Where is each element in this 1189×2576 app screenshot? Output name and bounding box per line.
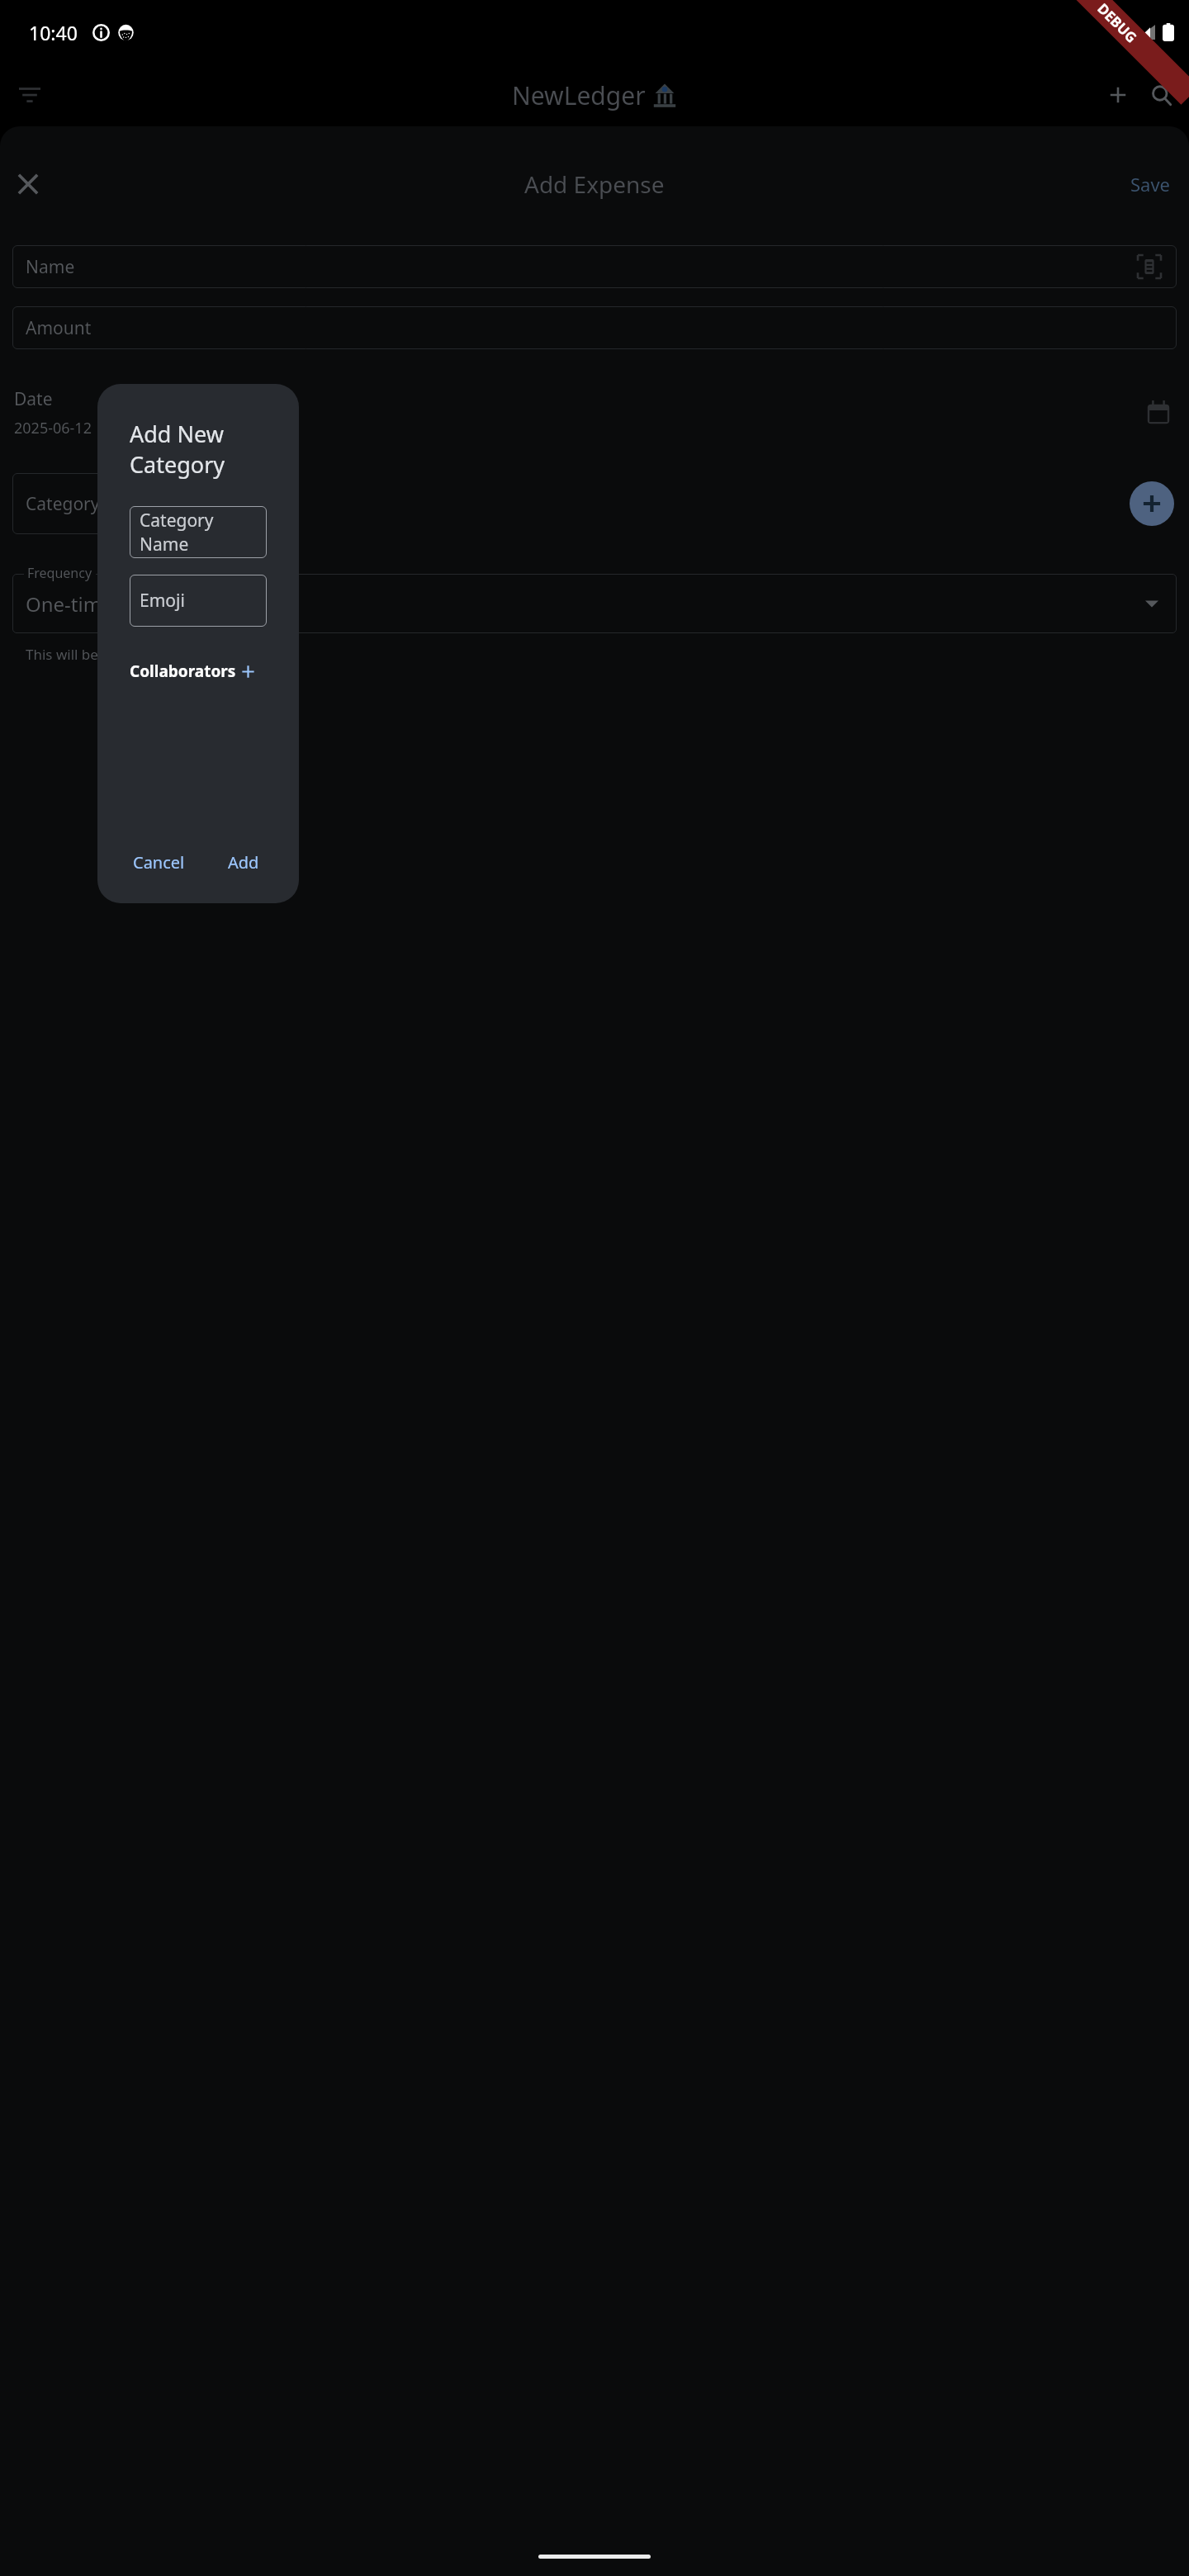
button[interactable]: Add: [216, 843, 271, 882]
other: Pick date: [1140, 395, 1177, 431]
staticText: NewLedger: [512, 78, 646, 112]
button[interactable]: Category Name: [130, 506, 267, 558]
staticText: Amount: [26, 316, 92, 340]
staticText: Add Expense: [524, 168, 665, 200]
staticText: Frequency: [27, 564, 92, 582]
button[interactable]: Save: [1130, 172, 1171, 197]
staticText: Collaborators: [130, 661, 236, 682]
button[interactable]: Emoji: [130, 575, 267, 627]
button[interactable]: Add: [1097, 73, 1139, 116]
staticText: Save: [1130, 172, 1171, 197]
staticText: 2025-06-12: [14, 418, 92, 438]
button[interactable]: Filter: [8, 73, 51, 116]
button[interactable]: Add category: [1130, 481, 1174, 526]
staticText: 10:40: [29, 20, 78, 45]
button[interactable]: Search: [1139, 73, 1182, 116]
staticText: Name: [26, 255, 75, 279]
staticText: Category Name: [140, 509, 267, 556]
button[interactable]: Add: [236, 655, 267, 688]
staticText: Cancel: [133, 851, 185, 874]
button[interactable]: Name: [12, 245, 1177, 288]
button[interactable]: Close: [7, 163, 50, 206]
button[interactable]: One-time: [12, 574, 1177, 633]
staticText: DEBUG: [1094, 0, 1141, 47]
button[interactable]: Category: [12, 473, 293, 534]
staticText: Category: [26, 492, 100, 516]
staticText: Emoji: [140, 589, 185, 613]
button[interactable]: Amount: [12, 306, 1177, 349]
staticText: Add: [228, 851, 259, 874]
staticText: Add New Category: [130, 419, 282, 480]
button[interactable]: Date: [12, 381, 1177, 445]
staticText: One-time: [26, 590, 113, 618]
button[interactable]: Cancel: [121, 843, 197, 882]
staticText: This will be a one-time expense: [26, 645, 232, 664]
staticText: Date: [14, 387, 53, 411]
button[interactable]: Scan receipt: [1134, 251, 1165, 282]
